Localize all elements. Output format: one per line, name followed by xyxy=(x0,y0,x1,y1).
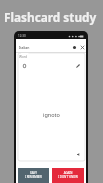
button[interactable]: Mark card xyxy=(20,62,28,70)
staticText: EASY I REMEMBER xyxy=(25,171,42,179)
staticText: Word xyxy=(19,55,28,59)
button[interactable]: Play pronunciation xyxy=(75,150,83,158)
button[interactable]: Edit xyxy=(74,62,82,70)
button[interactable]: Toggle theme xyxy=(72,45,77,50)
button[interactable]: Close xyxy=(80,45,85,50)
staticText: Flashcard study xyxy=(4,9,97,25)
staticText: 12:30 xyxy=(18,34,26,38)
staticText: Italian xyxy=(19,45,30,50)
button[interactable]: EASY I REMEMBER xyxy=(18,168,49,183)
staticText: ignoto xyxy=(43,111,60,118)
button[interactable]: AGAIN I DON'T KNOW xyxy=(52,168,84,183)
staticText: AGAIN I DON'T KNOW xyxy=(58,171,78,179)
